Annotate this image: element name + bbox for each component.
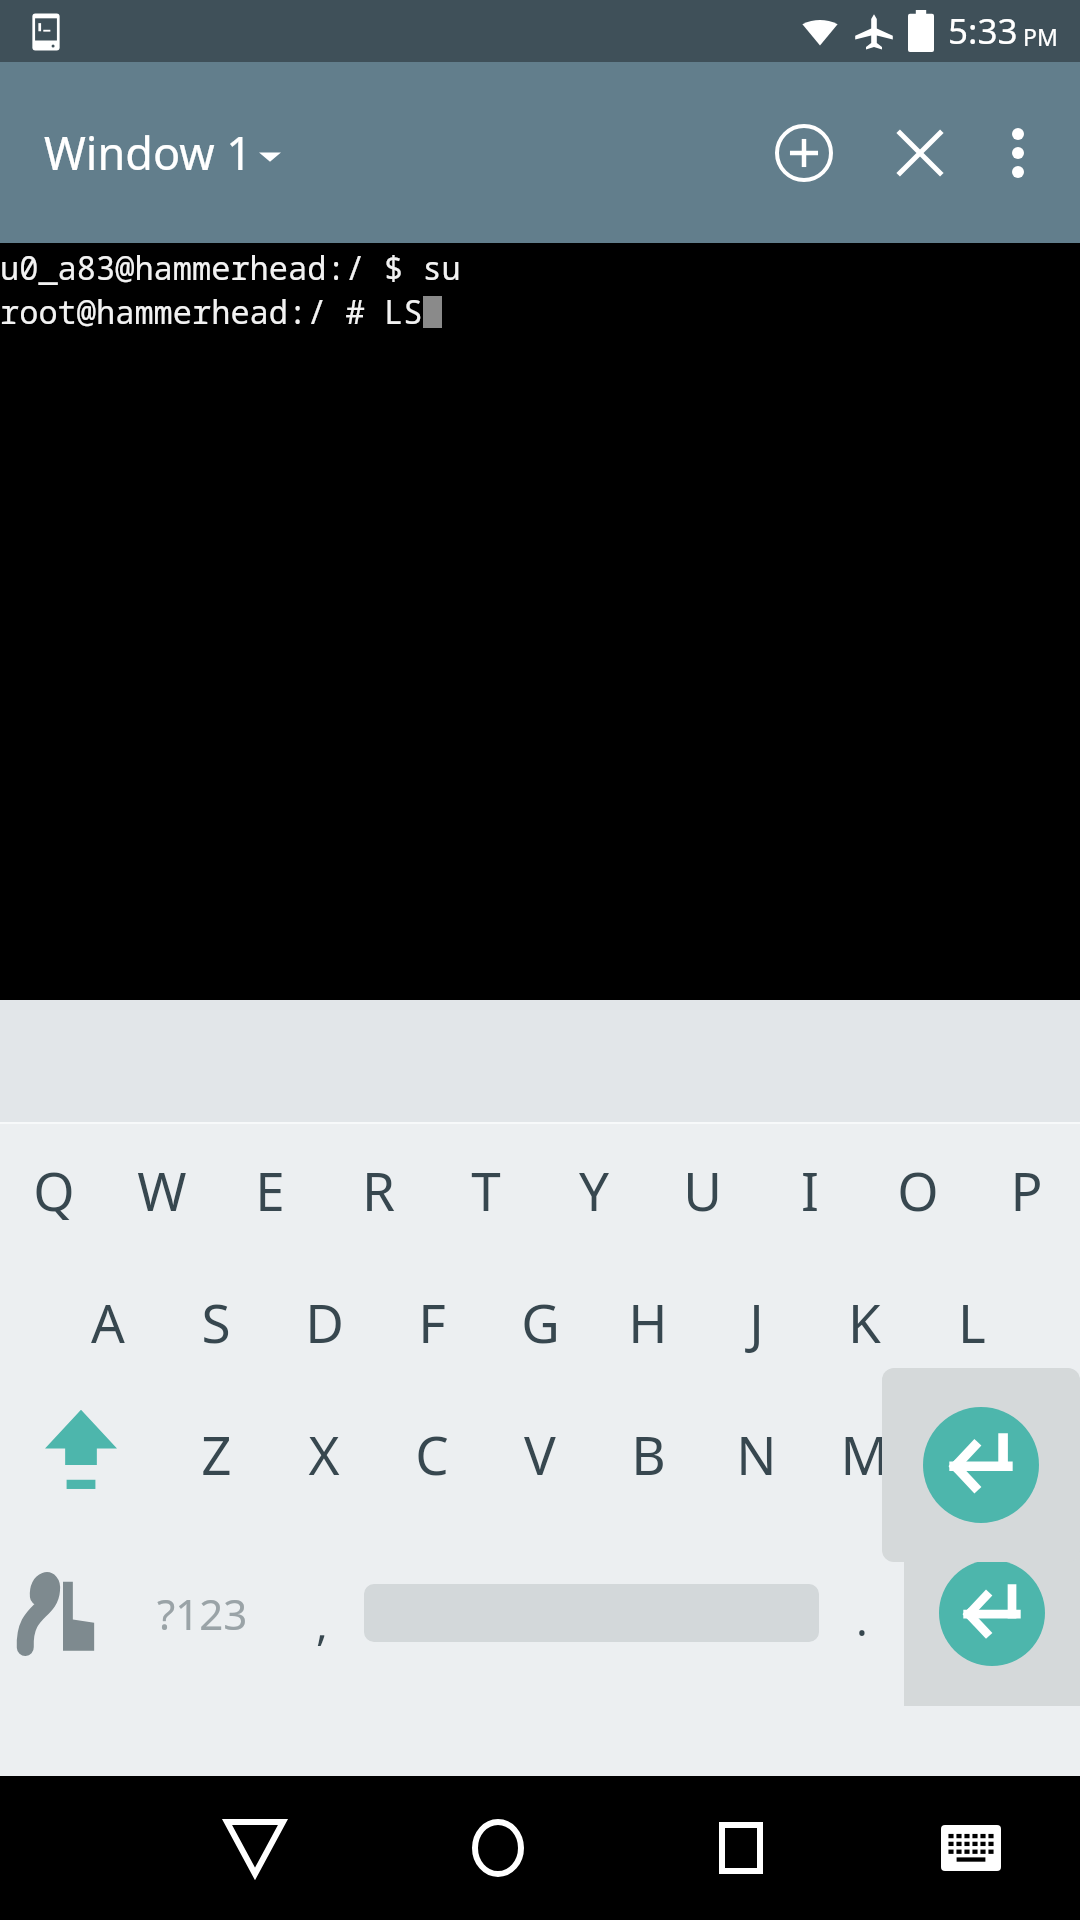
staticText: O (897, 1154, 939, 1226)
button[interactable]: E (216, 1124, 324, 1256)
staticText: root@hammerhead:/ # LS (0, 290, 423, 334)
button[interactable]: Y (540, 1124, 648, 1256)
button[interactable]: Close window (872, 105, 968, 201)
button[interactable]: Z (162, 1388, 270, 1520)
staticText: P (1010, 1154, 1043, 1226)
staticText: W (137, 1154, 187, 1226)
staticText: U (683, 1154, 722, 1226)
button[interactable]: C (378, 1388, 486, 1520)
staticText: u0_a83@hammerhead:/ $ su (0, 246, 461, 290)
button[interactable]: Enter (904, 1520, 1080, 1706)
button[interactable]: Window 1 (44, 122, 281, 183)
button[interactable]: More options (976, 111, 1060, 195)
button[interactable]: Space (364, 1520, 819, 1706)
staticText: A (91, 1286, 125, 1358)
staticText: I (801, 1154, 819, 1226)
button[interactable]: M (810, 1388, 918, 1520)
staticText: PM (1023, 21, 1058, 52)
staticText: C (415, 1418, 449, 1490)
button[interactable]: X (270, 1388, 378, 1520)
staticText: Window 1 (44, 122, 253, 183)
button[interactable]: U (648, 1124, 756, 1256)
button[interactable]: D (270, 1256, 378, 1388)
button[interactable]: K (810, 1256, 918, 1388)
button[interactable]: W (108, 1124, 216, 1256)
staticText: J (749, 1286, 764, 1358)
staticText: S (201, 1286, 231, 1358)
button[interactable]: N (702, 1388, 810, 1520)
button[interactable]: F (378, 1256, 486, 1388)
staticText: 5:33 (948, 7, 1018, 55)
staticText: E (255, 1154, 285, 1226)
button[interactable]: Hide keyboard (862, 1776, 1080, 1920)
button[interactable]: . (819, 1520, 904, 1706)
staticText: Z (201, 1418, 232, 1490)
button[interactable]: Gesture typing (0, 1520, 126, 1706)
staticText: Y (579, 1154, 609, 1226)
staticText: X (308, 1418, 340, 1490)
button[interactable]: H (594, 1256, 702, 1388)
button[interactable]: Back (133, 1776, 376, 1920)
button[interactable]: R (324, 1124, 432, 1256)
staticText: Q (33, 1154, 75, 1226)
staticText: G (521, 1286, 560, 1358)
button[interactable]: Home (376, 1776, 619, 1920)
button[interactable]: L (918, 1256, 1026, 1388)
button[interactable]: ?123 (126, 1520, 279, 1706)
staticText: T (471, 1154, 501, 1226)
staticText: D (305, 1286, 344, 1358)
staticText: R (362, 1154, 395, 1226)
button[interactable]: I (756, 1124, 864, 1256)
button[interactable]: O (864, 1124, 972, 1256)
staticText: F (418, 1286, 446, 1358)
button[interactable]: Enter key preview (882, 1368, 1080, 1562)
button[interactable]: Delete (918, 1388, 1080, 1520)
button[interactable]: P (972, 1124, 1080, 1256)
button[interactable]: J (702, 1256, 810, 1388)
staticText: M (840, 1418, 889, 1490)
button[interactable]: , (279, 1520, 364, 1706)
staticText: B (631, 1418, 666, 1490)
staticText: L (958, 1286, 986, 1358)
button[interactable]: Q (0, 1124, 108, 1256)
button[interactable]: S (162, 1256, 270, 1388)
staticText: N (736, 1418, 777, 1490)
staticText: ?123 (157, 1585, 248, 1642)
button[interactable]: A (54, 1256, 162, 1388)
button[interactable]: Recent apps (619, 1776, 862, 1920)
staticText: , (316, 1593, 328, 1653)
staticText: H (628, 1286, 668, 1358)
staticText: K (848, 1286, 881, 1358)
staticText: V (524, 1418, 556, 1490)
staticText: . (856, 1589, 868, 1649)
button[interactable]: V (486, 1388, 594, 1520)
button[interactable]: T (432, 1124, 540, 1256)
button[interactable]: G (486, 1256, 594, 1388)
button[interactable]: B (594, 1388, 702, 1520)
button[interactable]: Shift (0, 1388, 162, 1520)
button[interactable]: New window (756, 105, 852, 201)
